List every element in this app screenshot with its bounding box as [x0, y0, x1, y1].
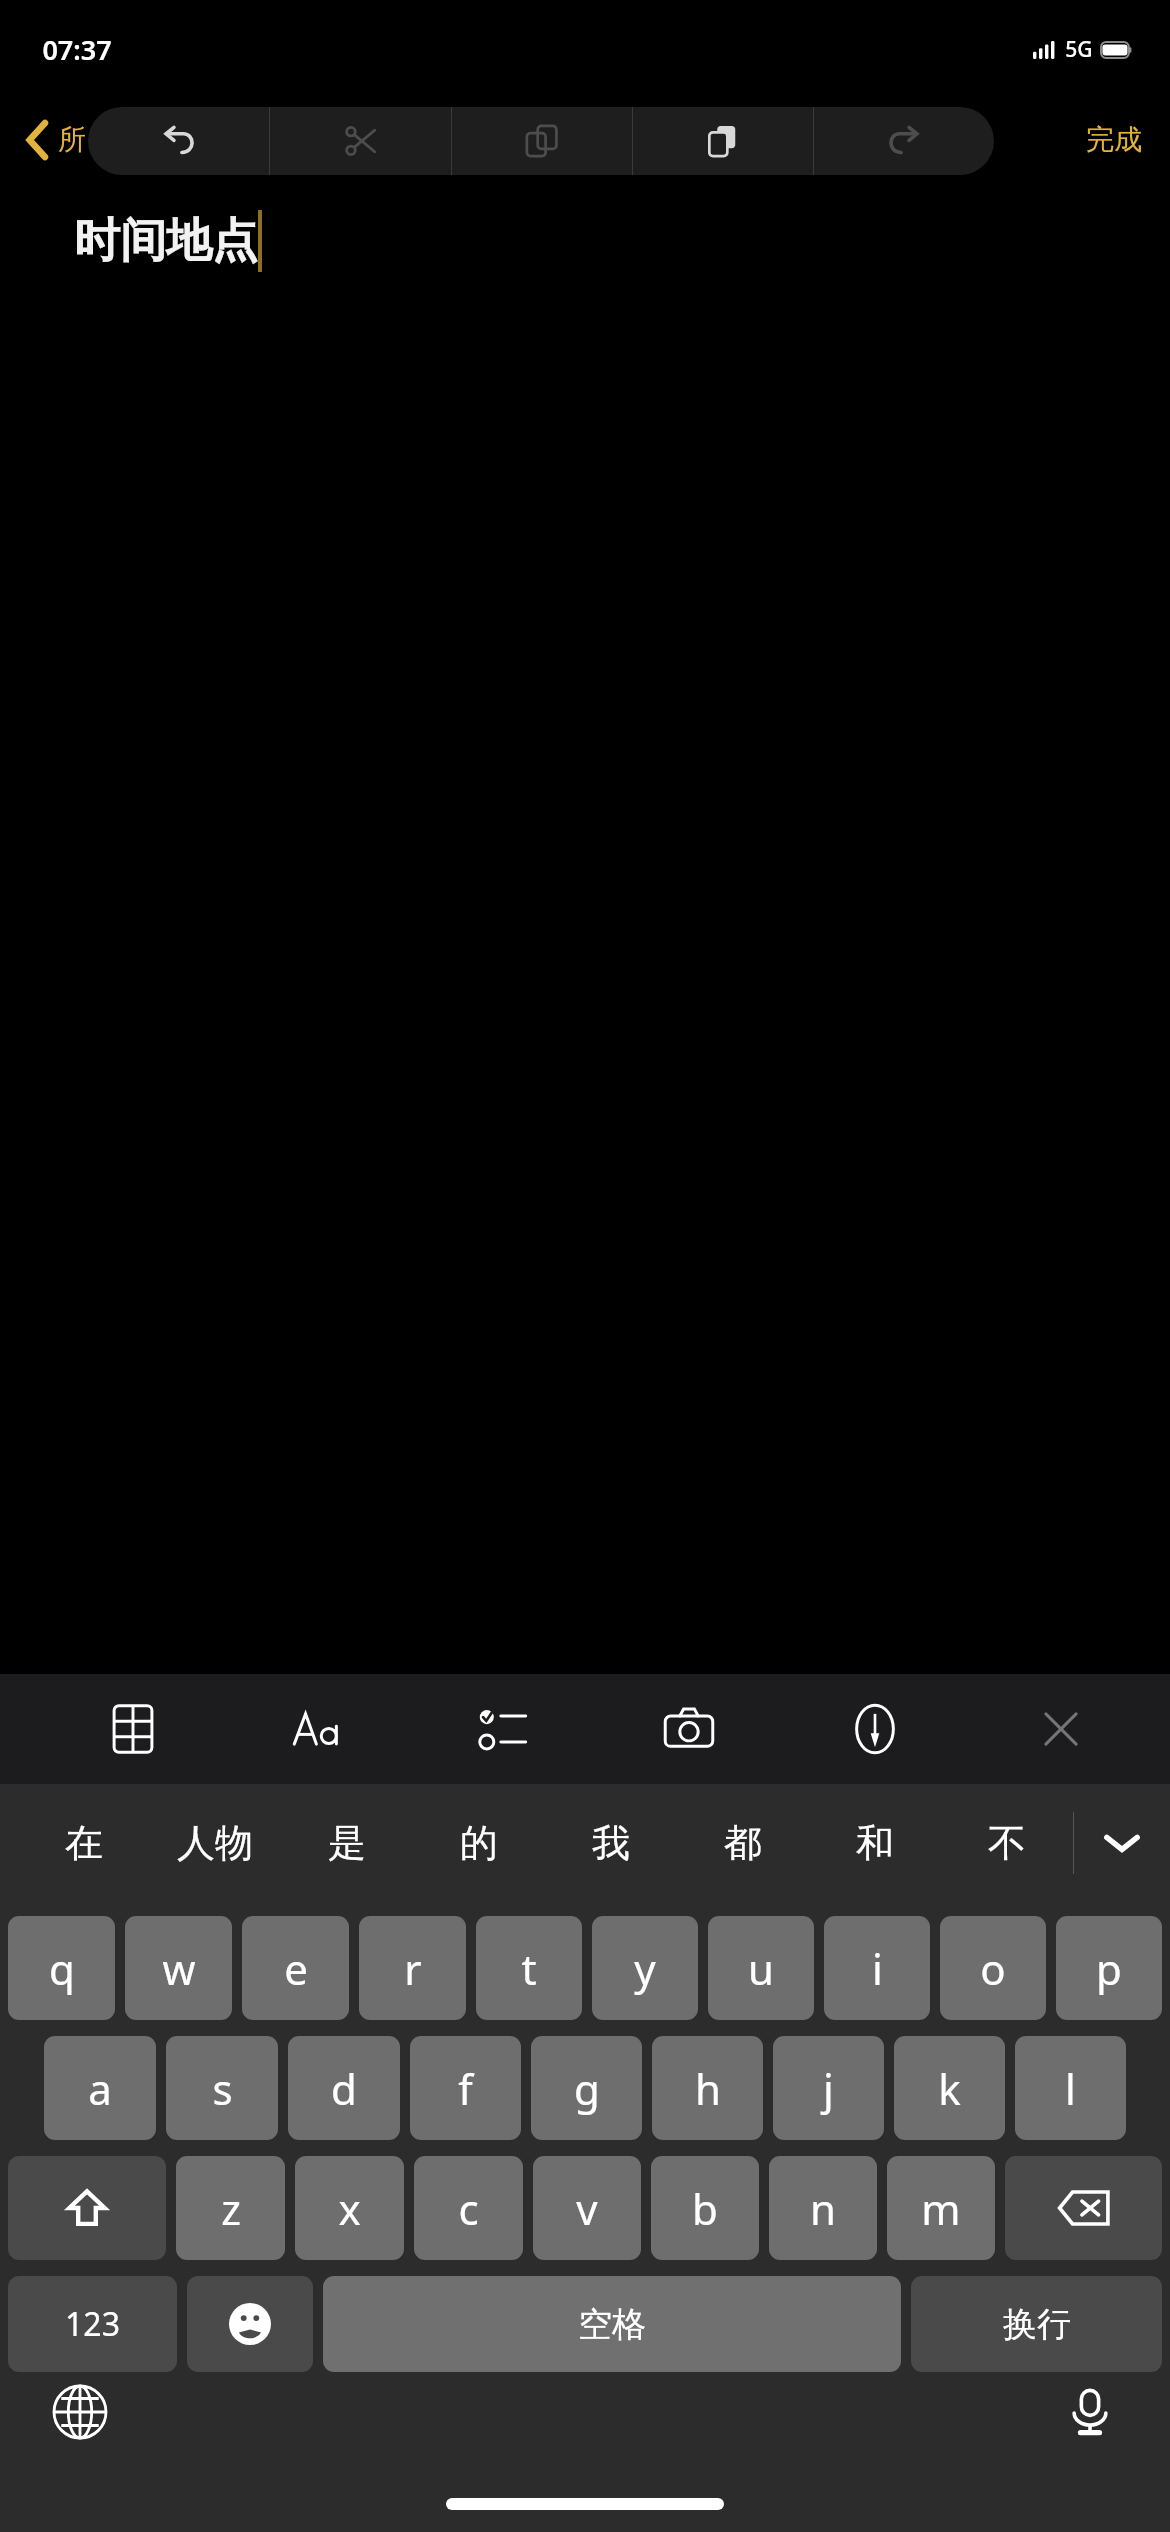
button[interactable]: Copy [452, 107, 632, 175]
button[interactable]: Hide candidates [1074, 1784, 1170, 1902]
staticText: 07:37 [42, 31, 112, 68]
staticText: 不 [988, 1819, 1026, 1867]
button[interactable]: e [242, 1916, 349, 2020]
staticText: v [576, 2180, 598, 2237]
button[interactable]: p [1056, 1916, 1162, 2020]
staticText: 在 [65, 1819, 103, 1867]
button[interactable]: 换行 [911, 2276, 1162, 2372]
button[interactable]: Table [40, 1674, 225, 1784]
button[interactable]: 和 [809, 1784, 941, 1902]
button[interactable]: Shift [8, 2156, 166, 2260]
button[interactable]: 123 [8, 2276, 177, 2372]
staticText: w [162, 1940, 196, 1997]
staticText: 是 [328, 1819, 366, 1867]
button[interactable]: u [708, 1916, 814, 2020]
button[interactable]: Cut [270, 107, 451, 175]
button[interactable]: d [288, 2036, 400, 2140]
button[interactable]: Backspace [1005, 2156, 1162, 2260]
staticText: y [634, 1940, 656, 1997]
staticText: j [823, 2060, 834, 2117]
staticText: t [521, 1940, 537, 1997]
staticText: h [695, 2060, 721, 2117]
button[interactable]: f [410, 2036, 521, 2140]
staticText: 空格 [578, 2303, 646, 2346]
button[interactable]: b [651, 2156, 759, 2260]
button[interactable]: t [476, 1916, 582, 2020]
staticText: c [458, 2180, 479, 2237]
button[interactable]: Markup [782, 1674, 968, 1784]
staticText: 123 [65, 2302, 120, 2346]
button[interactable]: Format [225, 1674, 410, 1784]
button[interactable]: m [887, 2156, 995, 2260]
button[interactable]: Redo [814, 107, 994, 175]
button[interactable]: 在 [18, 1784, 149, 1902]
button[interactable]: Camera [596, 1674, 782, 1784]
button[interactable]: a [44, 2036, 156, 2140]
staticText: p [1096, 1940, 1122, 1997]
staticText: d [331, 2060, 357, 2117]
button[interactable]: o [940, 1916, 1046, 2020]
button[interactable]: 我 [545, 1784, 677, 1902]
button[interactable]: l [1015, 2036, 1126, 2140]
staticText: 完成 [1086, 122, 1142, 157]
button[interactable]: h [652, 2036, 763, 2140]
button[interactable]: i [824, 1916, 930, 2020]
button[interactable]: x [295, 2156, 404, 2260]
button[interactable]: k [894, 2036, 1005, 2140]
staticText: 时间地点 [74, 212, 258, 270]
staticText: m [921, 2180, 961, 2237]
staticText: 我 [592, 1819, 630, 1867]
staticText: 都 [724, 1819, 762, 1867]
staticText: o [980, 1940, 1006, 1997]
button[interactable]: Undo [88, 107, 269, 175]
staticText: 人物 [177, 1819, 253, 1867]
staticText: i [872, 1940, 883, 1997]
staticText: r [404, 1940, 422, 1997]
button[interactable]: 的 [413, 1784, 545, 1902]
button[interactable]: c [414, 2156, 523, 2260]
staticText: b [692, 2180, 718, 2237]
staticText: n [810, 2180, 836, 2237]
staticText: s [212, 2060, 233, 2117]
button[interactable]: 是 [281, 1784, 413, 1902]
button[interactable]: j [773, 2036, 884, 2140]
staticText: 所 [58, 122, 86, 157]
staticText: e [284, 1940, 308, 1997]
staticText: z [221, 2180, 241, 2237]
staticText: a [88, 2060, 112, 2117]
button[interactable]: 空格 [323, 2276, 901, 2372]
button[interactable]: 完成 [1078, 116, 1150, 163]
button[interactable]: 都 [677, 1784, 809, 1902]
staticText: k [938, 2060, 961, 2117]
staticText: q [49, 1940, 75, 1997]
button[interactable]: v [533, 2156, 641, 2260]
staticText: l [1065, 2060, 1076, 2117]
button[interactable]: 所 [22, 116, 92, 163]
button[interactable]: 人物 [149, 1784, 281, 1902]
button[interactable]: z [176, 2156, 285, 2260]
staticText: 的 [460, 1819, 498, 1867]
button[interactable]: y [592, 1916, 698, 2020]
button[interactable]: 不 [941, 1784, 1073, 1902]
staticText: g [574, 2060, 600, 2117]
button[interactable]: r [359, 1916, 466, 2020]
button[interactable]: Checklist [410, 1674, 596, 1784]
button[interactable]: Emoji [187, 2276, 313, 2372]
staticText: 5G [1065, 35, 1093, 64]
staticText: 和 [856, 1819, 894, 1867]
button[interactable]: Switch keyboard [44, 2376, 116, 2448]
staticText: 换行 [1003, 2303, 1071, 2346]
button[interactable]: w [125, 1916, 232, 2020]
button[interactable]: s [166, 2036, 278, 2140]
button[interactable]: Close [968, 1674, 1154, 1784]
button[interactable]: Paste [633, 107, 813, 175]
button[interactable]: q [8, 1916, 115, 2020]
staticText: f [458, 2060, 473, 2117]
staticText: x [338, 2180, 361, 2237]
button[interactable]: g [531, 2036, 642, 2140]
button[interactable]: n [769, 2156, 877, 2260]
button[interactable]: Dictation [1054, 2376, 1126, 2448]
staticText: u [748, 1940, 774, 1997]
